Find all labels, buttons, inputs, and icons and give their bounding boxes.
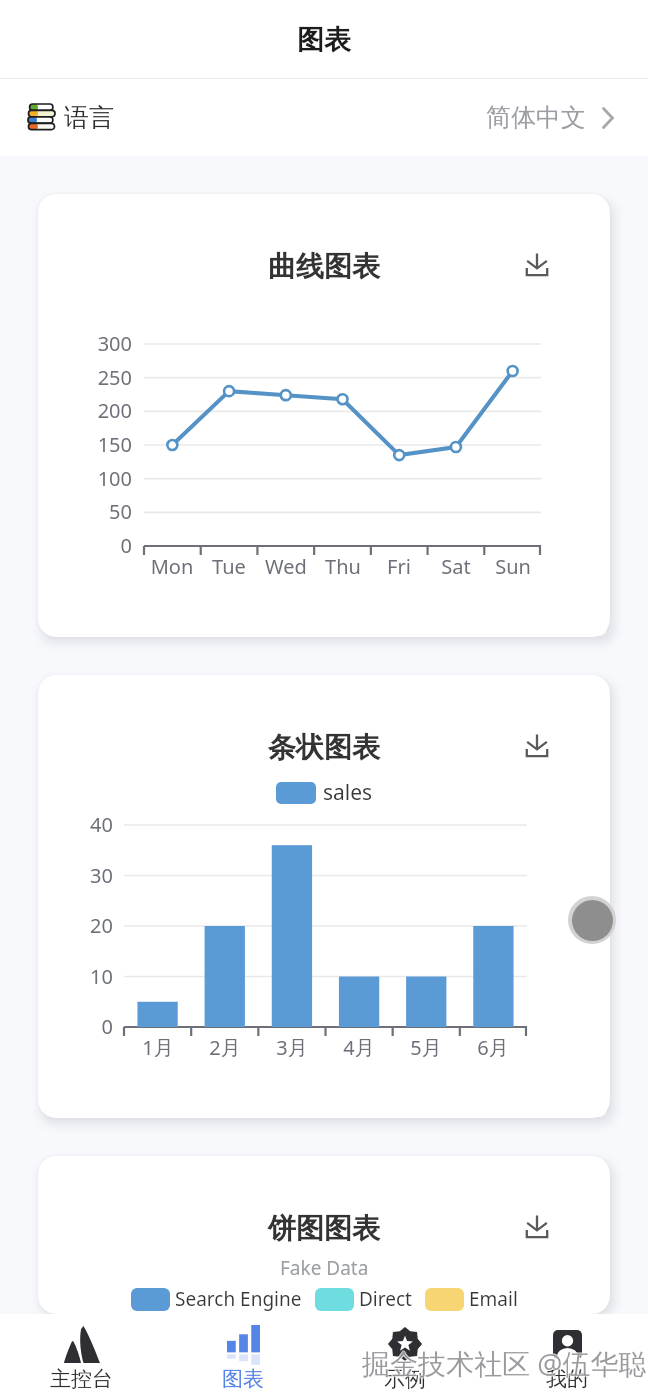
staticText: 条状图表 [268, 730, 380, 765]
staticText: 3月 [252, 1034, 332, 1061]
button[interactable]: 曲线图表 [38, 194, 610, 637]
staticText: 掘金技术社区 @伍华聪 [362, 1343, 647, 1381]
staticText: 1月 [118, 1034, 198, 1061]
staticText: Mon [132, 553, 212, 580]
staticText: 饼图图表 [268, 1211, 380, 1246]
staticText: 示例 [384, 1366, 426, 1392]
staticText: Tue [189, 553, 269, 580]
staticText: 20 [43, 912, 113, 939]
staticText: 250 [62, 364, 132, 391]
staticText: 曲线图表 [268, 249, 380, 284]
staticText: 简体中文 [486, 102, 586, 133]
staticText: Sat [416, 553, 496, 580]
staticText: Search Engine [175, 1286, 302, 1312]
staticText: 0 [62, 532, 132, 559]
staticText: Sun [473, 553, 553, 580]
staticText: Wed [246, 553, 326, 580]
staticText: Email [469, 1286, 518, 1312]
staticText: 6月 [453, 1034, 533, 1061]
button[interactable]: Download chart [520, 729, 554, 763]
button[interactable]: 示例 [324, 1314, 486, 1400]
staticText: Thu [303, 553, 383, 580]
staticText: 掘金技术社区 @伍华聪 [361, 1344, 646, 1382]
staticText: 主控台 [50, 1366, 113, 1392]
staticText: 300 [62, 330, 132, 357]
staticText: 掘金技术社区 @伍华聪 [363, 1344, 648, 1382]
staticText: 掘金技术社区 @伍华聪 [362, 1345, 647, 1383]
button[interactable]: 饼图图表 [38, 1156, 610, 1314]
staticText: sales [323, 778, 373, 807]
staticText: 40 [43, 811, 113, 838]
staticText: 200 [62, 397, 132, 424]
staticText: Direct [359, 1286, 412, 1312]
button[interactable]: 我的 [486, 1314, 648, 1400]
staticText: 2月 [185, 1034, 265, 1061]
staticText: Fri [359, 553, 439, 580]
staticText: 语言 [64, 102, 114, 133]
staticText: 30 [43, 862, 113, 889]
staticText: 我的 [546, 1366, 588, 1392]
staticText: 0 [43, 1013, 113, 1040]
staticText: 150 [62, 431, 132, 458]
button[interactable]: Back to top [568, 896, 616, 944]
staticText: 图表 [222, 1366, 264, 1392]
button[interactable]: 主控台 [0, 1314, 162, 1400]
button[interactable]: 图表 [162, 1314, 324, 1400]
staticText: Fake Data [280, 1255, 369, 1281]
button[interactable]: Download chart [520, 248, 554, 282]
button[interactable]: 条状图表 [38, 675, 610, 1118]
staticText: 10 [43, 963, 113, 990]
staticText: 50 [62, 498, 132, 525]
staticText: 100 [62, 465, 132, 492]
staticText: 图表 [297, 23, 351, 57]
staticText: 4月 [319, 1034, 399, 1061]
button[interactable]: 语言 [0, 79, 648, 156]
button[interactable]: Download chart [520, 1210, 554, 1244]
staticText: 5月 [386, 1034, 466, 1061]
staticText: 掘金技术社区 @伍华聪 [362, 1344, 647, 1382]
